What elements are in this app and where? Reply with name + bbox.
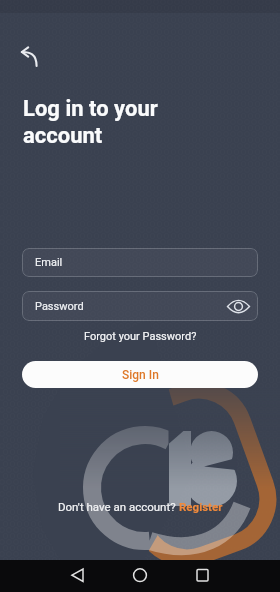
button[interactable] bbox=[14, 38, 46, 70]
staticText: Register bbox=[179, 500, 223, 513]
button[interactable]: Don't have an account? bbox=[0, 500, 280, 513]
staticText: Email bbox=[35, 256, 63, 269]
button[interactable]: Password bbox=[22, 291, 258, 321]
staticText: Password bbox=[35, 300, 84, 313]
staticText: Log in to your account bbox=[23, 96, 158, 148]
staticText: Sign In bbox=[122, 368, 159, 382]
button[interactable]: Sign In bbox=[22, 361, 258, 388]
button[interactable]: Forgot your Password? bbox=[84, 330, 197, 343]
button[interactable]: Email bbox=[22, 248, 258, 277]
staticText: Don't have an account? bbox=[58, 500, 179, 513]
